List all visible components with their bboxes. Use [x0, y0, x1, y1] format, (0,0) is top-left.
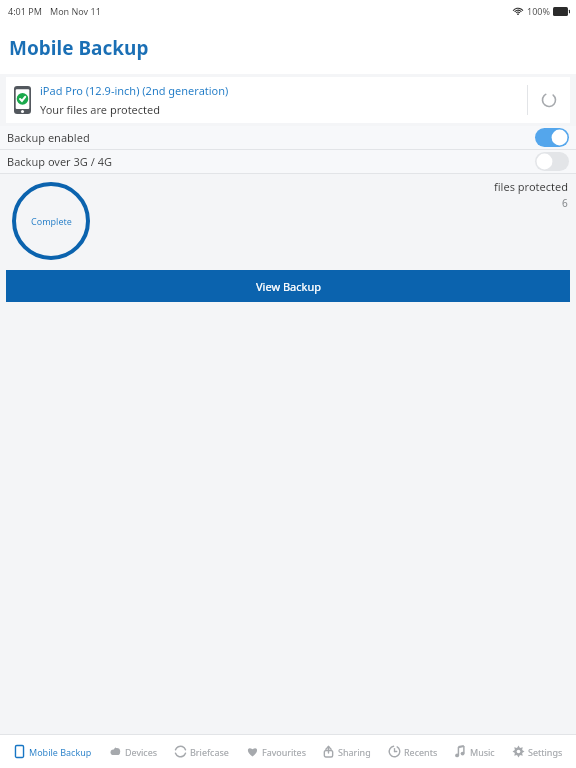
staticText: Mobile Backup: [9, 35, 149, 61]
staticText: files protected: [494, 179, 568, 194]
button[interactable]: Sharing: [319, 745, 374, 758]
button[interactable]: iPad Pro (12.9-inch) (2nd generation): [6, 77, 570, 123]
button[interactable]: Recents: [385, 745, 441, 758]
staticText: Mon Nov 11: [50, 5, 101, 17]
button[interactable]: Devices: [106, 745, 161, 758]
staticText: 100%: [527, 5, 550, 17]
staticText: iPad Pro (12.9-inch) (2nd generation): [40, 83, 229, 98]
staticText: Backup over 3G / 4G: [7, 154, 112, 169]
button[interactable]: Settings: [509, 745, 566, 758]
staticText: Mobile Backup: [29, 746, 92, 758]
button[interactable]: Mobile Backup: [10, 745, 95, 758]
staticText: Devices: [125, 746, 158, 758]
button[interactable]: Favourites: [243, 745, 309, 758]
staticText: Briefcase: [190, 746, 229, 758]
button[interactable]: Refresh: [528, 77, 570, 123]
staticText: Settings: [528, 746, 563, 758]
button[interactable]: Backup enabled: [0, 126, 576, 149]
staticText: 4:01 PM: [8, 5, 42, 17]
staticText: Recents: [404, 746, 438, 758]
button[interactable]: Music: [451, 745, 498, 758]
staticText: View Backup: [256, 279, 321, 294]
staticText: Your files are protected: [40, 102, 161, 117]
staticText: 6: [562, 196, 568, 210]
staticText: Complete: [31, 215, 72, 227]
button[interactable]: Briefcase: [171, 745, 232, 758]
staticText: Music: [470, 746, 495, 758]
staticText: Backup enabled: [7, 130, 90, 145]
staticText: Favourites: [262, 746, 306, 758]
button[interactable]: View Backup: [6, 270, 570, 302]
staticText: Sharing: [338, 746, 371, 758]
button[interactable]: Backup over 3G / 4G: [0, 150, 576, 173]
